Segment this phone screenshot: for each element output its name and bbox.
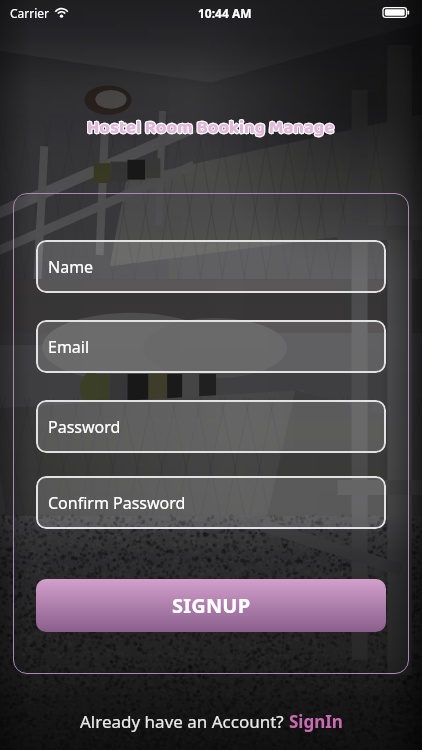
staticText: Hostel Room Booking Manage <box>87 113 335 143</box>
staticText: Already have an Account? <box>80 710 289 733</box>
staticText: Hostel Room Booking Manage <box>87 113 335 143</box>
button[interactable]: Confirm Password <box>36 476 386 529</box>
staticText: 10:44 AM <box>198 5 252 21</box>
button[interactable]: Email <box>36 320 386 373</box>
staticText: Carrier <box>10 5 50 21</box>
button[interactable]: Name <box>36 240 386 293</box>
button[interactable]: Password <box>36 400 386 453</box>
staticText: Name <box>48 256 94 278</box>
staticText: Email <box>48 336 90 358</box>
staticText: Confirm Password <box>48 492 186 514</box>
button[interactable]: SignIn <box>289 710 343 733</box>
staticText: Password <box>48 416 121 438</box>
staticText: SIGNUP <box>172 592 251 619</box>
button[interactable]: SIGNUP <box>36 579 386 632</box>
